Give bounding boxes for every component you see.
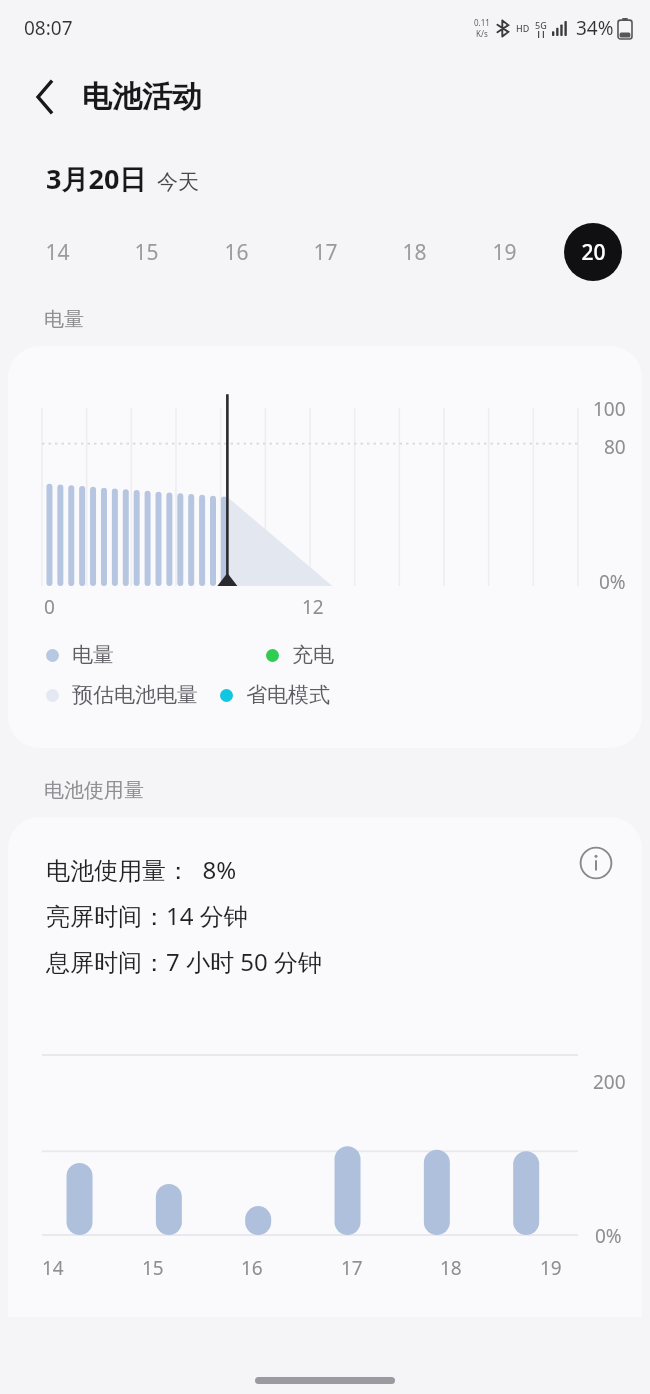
staticText: 18 <box>440 1255 462 1281</box>
staticText: K/s <box>476 28 488 39</box>
staticText: 0% <box>599 569 626 595</box>
staticText: HD <box>516 22 530 34</box>
staticText: 省电模式 <box>246 682 330 708</box>
button[interactable]: 20 <box>564 223 622 281</box>
staticText: 0.11 <box>474 17 490 28</box>
staticText: 15 <box>134 238 159 267</box>
staticText: 15 <box>142 1255 164 1281</box>
staticText: 16 <box>241 1255 263 1281</box>
staticText: 18 <box>402 238 427 267</box>
staticText: 电池活动 <box>82 78 202 116</box>
button[interactable]: 14 <box>28 223 86 281</box>
staticText: 12 <box>302 594 324 620</box>
staticText: 电池使用量： 8% <box>46 853 237 886</box>
staticText: 17 <box>313 238 338 267</box>
staticText: 预估电池电量 <box>72 682 198 708</box>
staticText: 34% <box>576 15 614 41</box>
button[interactable]: Back <box>18 71 70 123</box>
button[interactable]: 16 <box>207 223 265 281</box>
staticText: 亮屏时间：14 分钟 <box>46 899 248 932</box>
staticText: 16 <box>224 238 249 267</box>
staticText: 充电 <box>292 642 334 668</box>
button[interactable]: 电池使用量： 8% <box>8 817 642 1317</box>
button[interactable]: 100 <box>8 346 642 748</box>
staticText: 100 <box>593 396 626 422</box>
staticText: 14 <box>42 1255 64 1281</box>
staticText: 电量 <box>72 642 114 668</box>
staticText: 200 <box>593 1069 626 1095</box>
staticText: 3月20日 <box>46 160 147 197</box>
button[interactable]: Information <box>574 841 618 885</box>
staticText: 0% <box>595 1223 622 1249</box>
button[interactable]: 17 <box>296 223 354 281</box>
staticText: 20 <box>581 238 606 267</box>
staticText: 14 <box>45 238 70 267</box>
staticText: 电池使用量 <box>44 778 144 803</box>
staticText: 17 <box>341 1255 363 1281</box>
staticText: 息屏时间：7 小时 50 分钟 <box>46 945 322 978</box>
staticText: 5G <box>535 19 547 31</box>
staticText: 电量 <box>44 307 84 332</box>
staticText: 80 <box>604 434 626 460</box>
button[interactable]: 18 <box>385 223 443 281</box>
staticText: 19 <box>540 1255 562 1281</box>
staticText: 0 <box>44 594 55 620</box>
button[interactable]: 19 <box>475 223 533 281</box>
staticText: 08:07 <box>24 15 73 41</box>
staticText: 今天 <box>157 169 199 195</box>
staticText: 19 <box>492 238 517 267</box>
button[interactable]: 15 <box>117 223 175 281</box>
